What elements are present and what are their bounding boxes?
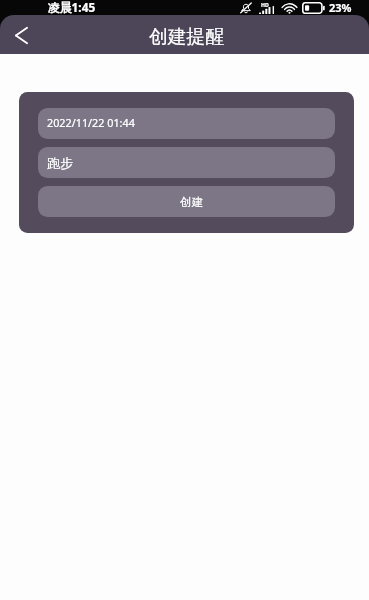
- staticText: 创建: [180, 195, 203, 209]
- button[interactable]: 创建: [38, 186, 335, 217]
- button[interactable]: 2022/11/22 01:44: [38, 108, 335, 139]
- staticText: 23%: [329, 0, 352, 15]
- button[interactable]: Back: [0, 15, 42, 54]
- button[interactable]: 跑步: [38, 147, 335, 178]
- staticText: 跑步: [47, 155, 74, 172]
- staticText: 凌晨1:45: [48, 0, 96, 14]
- staticText: HD: [261, 1, 269, 8]
- staticText: 创建提醒: [149, 25, 225, 49]
- staticText: 2022/11/22 01:44: [47, 115, 135, 130]
